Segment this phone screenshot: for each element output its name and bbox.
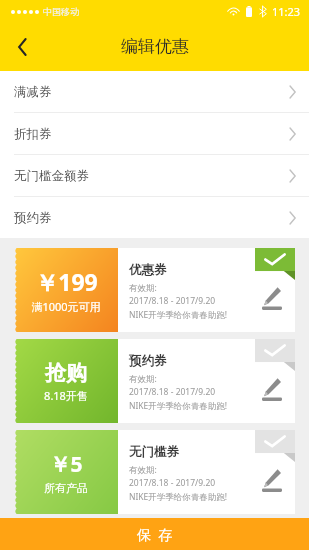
staticText: NIKE开学季给你青春助跑! [129,491,228,503]
button[interactable]: 满减券 [0,71,309,112]
staticText: 满减券 [14,84,52,100]
staticText: 预约券 [14,210,52,226]
button[interactable]: ￥199 [14,248,295,332]
button[interactable]: 抢购 [14,339,295,423]
staticText: ￥5 [49,450,83,479]
staticText: 优惠券 [129,262,167,278]
staticText: 2017/8.18 - 2017/9.20 [129,386,216,398]
button[interactable]: 折扣券 [0,113,309,154]
button[interactable]: ￥5 [14,430,295,514]
staticText: 11:23 [272,4,301,19]
button[interactable]: 保 存 [0,518,309,550]
staticText: 有效期: [129,373,157,385]
button[interactable]: Edit [255,280,289,314]
staticText: 无门槛金额券 [14,168,89,184]
button[interactable]: Back [0,25,44,69]
staticText: 无门槛券 [129,444,179,460]
staticText: 折扣券 [14,126,52,142]
staticText: 2017/8.18 - 2017/9.20 [129,477,216,489]
staticText: 中国移动 [43,6,79,17]
staticText: 8.18开售 [44,388,88,403]
staticText: 抢购 [45,360,87,386]
staticText: 有效期: [129,282,157,294]
staticText: 预约券 [129,353,167,369]
staticText: NIKE开学季给你青春助跑! [129,309,228,321]
button[interactable]: 无门槛金额券 [0,155,309,196]
button[interactable]: Edit [255,462,289,496]
staticText: 有效期: [129,464,157,476]
button[interactable]: Edit [255,371,289,405]
staticText: 编辑优惠 [121,36,189,57]
staticText: 所有产品 [44,481,88,495]
staticText: ￥199 [35,266,98,297]
staticText: 2017/8.18 - 2017/9.20 [129,295,216,307]
staticText: NIKE开学季给你青春助跑! [129,400,228,412]
staticText: 保 存 [137,525,173,544]
staticText: 满1000元可用 [31,299,101,314]
button[interactable]: 预约券 [0,197,309,238]
